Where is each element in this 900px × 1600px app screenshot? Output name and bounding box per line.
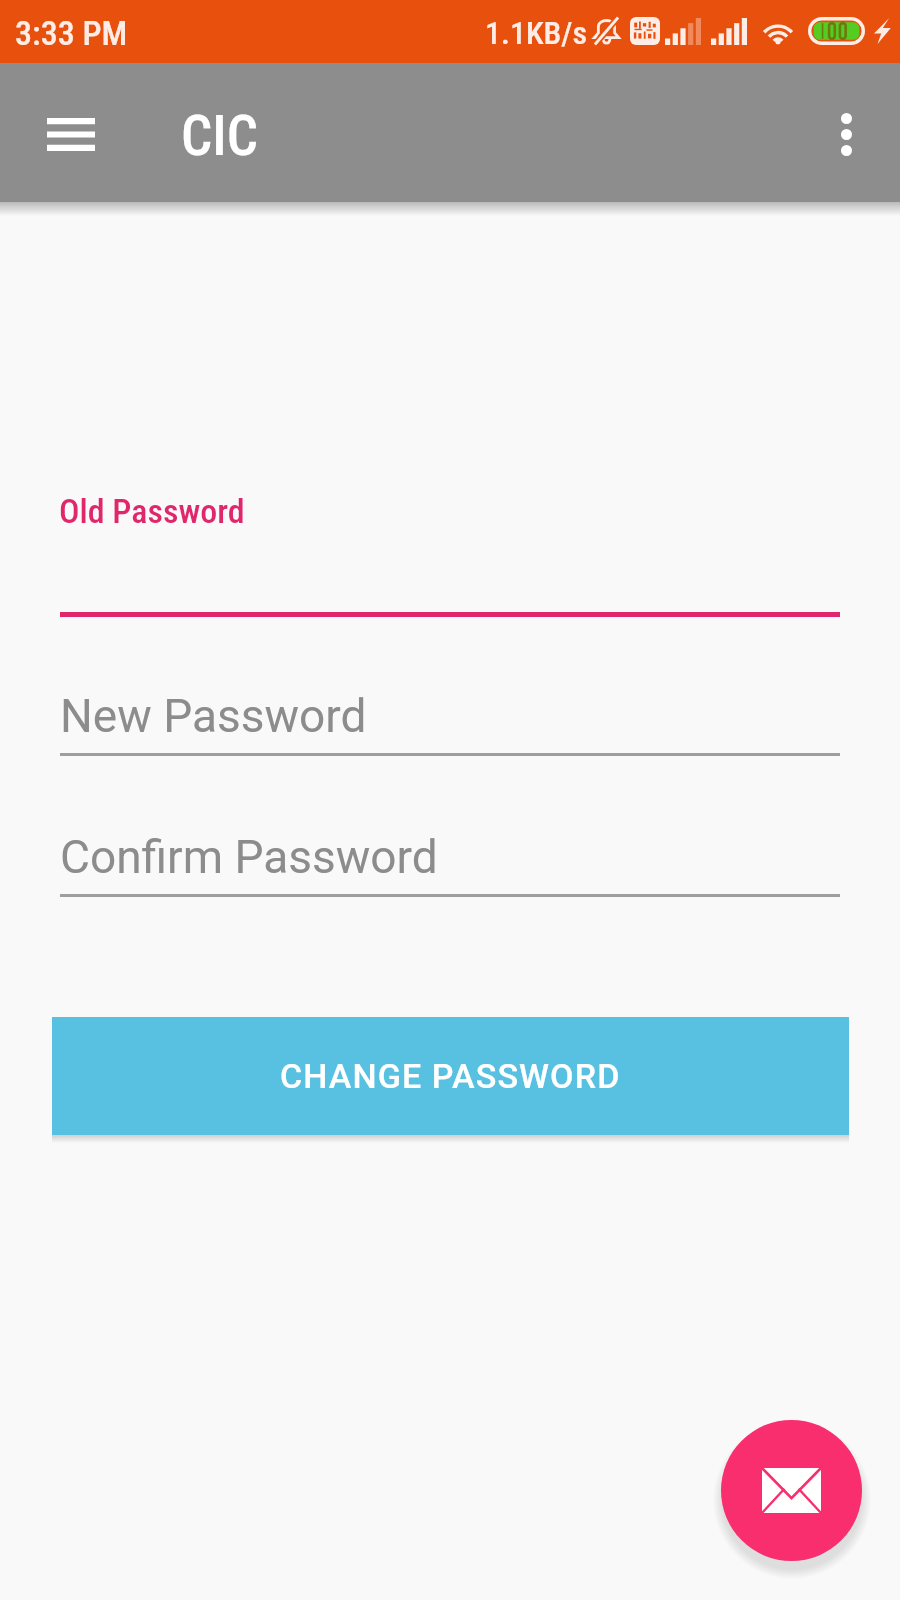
staticText: CIC (181, 104, 258, 168)
button[interactable]: Open navigation menu (23, 86, 119, 182)
button[interactable]: Compose mail (721, 1420, 862, 1561)
button[interactable]: CHANGE PASSWORD (52, 1017, 849, 1135)
staticText: 1.1KB/s (485, 14, 587, 52)
staticText: CHANGE PASSWORD (280, 1056, 621, 1096)
button[interactable]: Old Password (60, 481, 840, 617)
button[interactable]: More options (798, 86, 894, 182)
staticText: Old Password (59, 491, 245, 531)
button[interactable]: Confirm Password (60, 813, 840, 897)
staticText: 3:33 PM (15, 13, 128, 53)
button[interactable]: New Password (60, 672, 840, 756)
staticText: Confirm Password (60, 830, 438, 884)
staticText: New Password (60, 689, 367, 743)
